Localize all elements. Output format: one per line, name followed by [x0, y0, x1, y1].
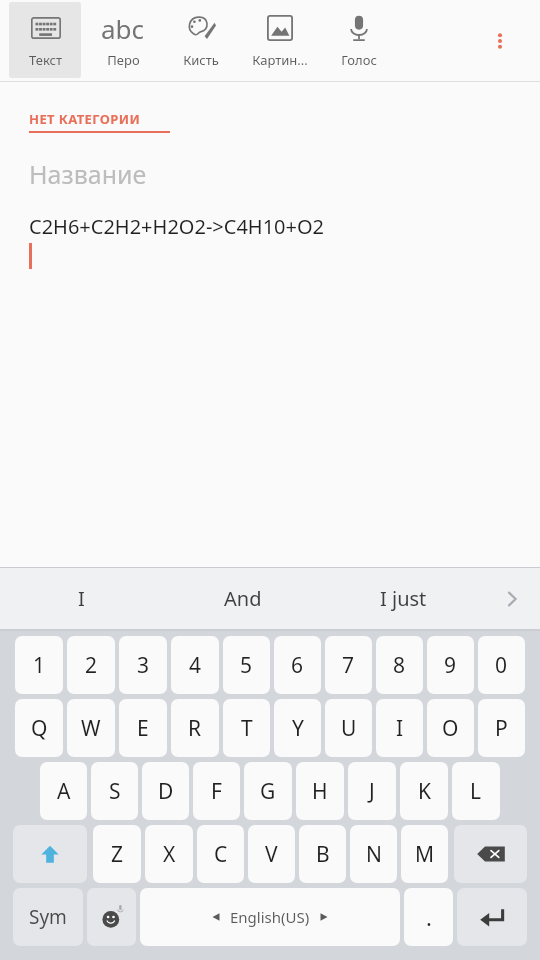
- staticText: I: [396, 714, 404, 743]
- button[interactable]: U: [325, 699, 372, 757]
- staticText: 7: [342, 651, 355, 680]
- staticText: Перо: [107, 51, 140, 69]
- button[interactable]: 1: [15, 636, 63, 694]
- staticText: 2: [85, 651, 98, 680]
- button[interactable]: B: [299, 825, 346, 883]
- staticText: 4: [189, 651, 202, 680]
- button[interactable]: W: [67, 699, 115, 757]
- button[interactable]: X: [145, 825, 193, 883]
- staticText: W: [81, 714, 101, 743]
- button[interactable]: Голос: [323, 2, 395, 78]
- button[interactable]: D: [142, 762, 189, 820]
- staticText: And: [224, 585, 262, 612]
- button[interactable]: 3: [119, 636, 167, 694]
- button[interactable]: G: [244, 762, 292, 820]
- button[interactable]: N: [350, 825, 397, 883]
- button[interactable]: C: [197, 825, 244, 883]
- button[interactable]: V: [248, 825, 295, 883]
- staticText: Sym: [29, 904, 67, 930]
- button[interactable]: H: [296, 762, 344, 820]
- staticText: B: [316, 840, 330, 869]
- staticText: 1: [33, 651, 46, 680]
- button[interactable]: More options: [478, 19, 522, 63]
- staticText: Кисть: [183, 51, 219, 69]
- button[interactable]: Q: [15, 699, 63, 757]
- button[interactable]: 9: [427, 636, 474, 694]
- button[interactable]: 8: [376, 636, 423, 694]
- staticText: Z: [111, 840, 124, 869]
- staticText: D: [158, 777, 174, 806]
- staticText: .: [426, 902, 432, 932]
- staticText: 3: [137, 651, 150, 680]
- button[interactable]: K: [400, 762, 448, 820]
- staticText: L: [470, 777, 482, 806]
- button[interactable]: A: [40, 762, 87, 820]
- staticText: 6: [291, 651, 304, 680]
- button[interactable]: Backspace: [454, 825, 527, 883]
- button[interactable]: .: [404, 888, 453, 946]
- button[interactable]: I just: [323, 568, 484, 629]
- staticText: Y: [292, 714, 304, 743]
- staticText: M: [415, 840, 435, 869]
- staticText: E: [137, 714, 149, 743]
- staticText: H: [312, 777, 328, 806]
- button[interactable]: Картин...: [243, 2, 317, 78]
- staticText: English(US): [230, 907, 310, 927]
- button[interactable]: F: [193, 762, 240, 820]
- button[interactable]: Space, English(US): [140, 888, 400, 946]
- button[interactable]: E: [119, 699, 167, 757]
- button[interactable]: And: [162, 568, 323, 629]
- staticText: НЕТ КАТЕГОРИИ: [29, 110, 141, 128]
- button[interactable]: abc: [87, 2, 159, 78]
- button[interactable]: J: [348, 762, 396, 820]
- button[interactable]: O: [427, 699, 474, 757]
- button[interactable]: R: [171, 699, 219, 757]
- button[interactable]: More suggestions: [484, 568, 540, 629]
- staticText: C: [214, 840, 228, 869]
- button[interactable]: НЕТ КАТЕГОРИИ: [29, 110, 170, 133]
- staticText: T: [241, 714, 253, 743]
- button[interactable]: 0: [478, 636, 525, 694]
- button[interactable]: Shift: [13, 825, 87, 883]
- staticText: R: [188, 714, 202, 743]
- button[interactable]: I: [376, 699, 423, 757]
- button[interactable]: Текст: [9, 2, 81, 78]
- button[interactable]: S: [91, 762, 138, 820]
- button[interactable]: Кисть: [165, 2, 237, 78]
- staticText: F: [211, 777, 222, 806]
- staticText: 9: [444, 651, 457, 680]
- button[interactable]: 2: [67, 636, 115, 694]
- staticText: 5: [240, 651, 253, 680]
- staticText: N: [366, 840, 382, 869]
- button[interactable]: T: [223, 699, 270, 757]
- button[interactable]: I: [0, 568, 162, 629]
- staticText: G: [260, 777, 276, 806]
- button[interactable]: 4: [171, 636, 219, 694]
- button[interactable]: L: [452, 762, 500, 820]
- button[interactable]: P: [478, 699, 525, 757]
- staticText: K: [418, 777, 431, 806]
- staticText: X: [163, 840, 176, 869]
- staticText: 0: [495, 651, 508, 680]
- button[interactable]: Sym: [13, 888, 83, 946]
- staticText: J: [369, 777, 375, 806]
- staticText: S: [109, 777, 121, 806]
- button[interactable]: Emoji: [87, 888, 136, 946]
- staticText: O: [442, 714, 459, 743]
- staticText: A: [57, 777, 71, 806]
- button[interactable]: Z: [93, 825, 141, 883]
- staticText: V: [265, 840, 278, 869]
- button[interactable]: 7: [325, 636, 372, 694]
- staticText: Текст: [29, 51, 62, 69]
- button[interactable]: M: [401, 825, 448, 883]
- button[interactable]: 6: [274, 636, 321, 694]
- staticText: I just: [380, 585, 427, 612]
- staticText: C2H6+C2H2+H2O2->C4H10+O2: [29, 213, 325, 240]
- staticText: Картин...: [252, 51, 308, 69]
- button[interactable]: 5: [223, 636, 270, 694]
- button[interactable]: Y: [274, 699, 321, 757]
- staticText: P: [495, 714, 508, 743]
- button[interactable]: Enter: [457, 888, 527, 946]
- staticText: Q: [31, 714, 48, 743]
- staticText: abc: [101, 11, 145, 45]
